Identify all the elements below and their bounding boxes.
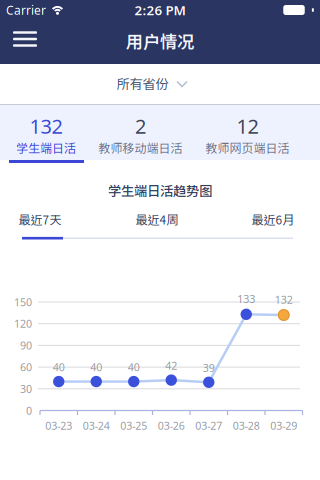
staticText: 12 <box>236 113 258 139</box>
staticText: 39 <box>203 361 215 375</box>
staticText: 学生端日活 <box>16 141 76 155</box>
staticText: 03-26 <box>158 418 185 433</box>
staticText: 40 <box>53 360 65 374</box>
staticText: 90 <box>20 338 32 352</box>
staticText: 教师网页端日活 <box>205 141 289 155</box>
staticText: 0 <box>26 403 32 418</box>
staticText: 60 <box>20 360 32 374</box>
button[interactable]: 所有省份 <box>0 64 320 104</box>
staticText: 03-29 <box>270 418 297 433</box>
button[interactable]: Menu <box>0 26 37 58</box>
staticText: 40 <box>128 360 140 374</box>
staticText: 学生端日活趋势图 <box>108 183 212 199</box>
staticText: 120 <box>14 317 32 331</box>
staticText: 用户情况 <box>126 32 194 52</box>
staticText: 132 <box>29 113 62 139</box>
staticText: 03-23 <box>45 418 72 433</box>
button[interactable]: 2 <box>92 110 189 155</box>
staticText: 30 <box>20 382 32 396</box>
staticText: 03-25 <box>120 418 147 433</box>
staticText: 150 <box>14 295 32 309</box>
staticText: 03-28 <box>233 418 260 433</box>
button[interactable]: 12 <box>189 110 306 155</box>
staticText: 03-24 <box>83 418 110 433</box>
button[interactable]: 132 <box>0 110 92 155</box>
staticText: Carrier <box>6 2 46 18</box>
button[interactable]: 最近7天 <box>18 210 61 230</box>
staticText: 2:26 PM <box>134 1 185 19</box>
staticText: 最近7天 <box>18 213 61 227</box>
staticText: 132 <box>275 292 293 307</box>
staticText: 03-27 <box>195 418 222 433</box>
staticText: 最近4周 <box>135 213 178 227</box>
staticText: 所有省份 <box>116 76 168 92</box>
button[interactable]: 最近6月 <box>251 210 294 230</box>
staticText: 133 <box>237 292 255 306</box>
staticText: 42 <box>165 358 177 373</box>
staticText: 2 <box>135 113 146 139</box>
staticText: 40 <box>90 360 102 374</box>
staticText: 最近6月 <box>251 213 294 227</box>
button[interactable]: 最近4周 <box>135 210 178 230</box>
staticText: 教师移动端日活 <box>98 141 182 155</box>
